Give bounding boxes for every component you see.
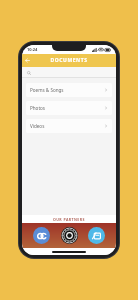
staticText: OUR PARTNERS	[53, 217, 85, 222]
staticText: Photos	[30, 105, 46, 111]
button[interactable]: Partner	[88, 227, 105, 244]
button[interactable]: Back	[22, 55, 33, 66]
button[interactable]: Videos	[26, 119, 112, 133]
staticText: Poems & Songs	[30, 87, 64, 93]
staticText: Videos	[30, 123, 45, 129]
button[interactable]: Partner OC	[33, 227, 50, 244]
button[interactable]: Partner badge	[61, 227, 78, 244]
button[interactable]: Search	[22, 67, 116, 78]
staticText: DOCUMENTS	[50, 57, 88, 64]
button[interactable]: Photos	[26, 101, 112, 115]
staticText: 10:24	[27, 47, 38, 52]
button[interactable]: Poems & Songs	[26, 83, 112, 97]
